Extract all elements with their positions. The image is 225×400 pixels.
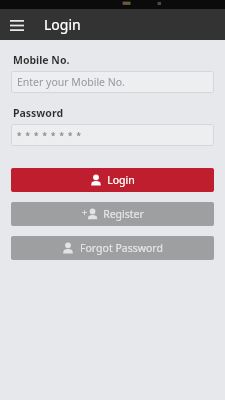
staticText: Mobile No.	[13, 53, 70, 67]
staticText: Forgot Password	[80, 241, 163, 255]
button[interactable]: Login	[11, 168, 214, 192]
staticText: * * * * * * * *	[17, 130, 81, 141]
staticText: Register	[103, 207, 144, 221]
button[interactable]: Open navigation menu	[6, 14, 28, 36]
staticText: Login	[44, 15, 81, 34]
button[interactable]: Register	[11, 202, 214, 226]
button[interactable]: Enter your Mobile No.	[11, 71, 214, 93]
staticText: Login	[107, 173, 135, 187]
button[interactable]: * * * * * * * *	[11, 124, 214, 146]
staticText: Enter your Mobile No.	[17, 75, 125, 89]
button[interactable]: Forgot Password	[11, 236, 214, 260]
staticText: Password	[13, 106, 64, 120]
